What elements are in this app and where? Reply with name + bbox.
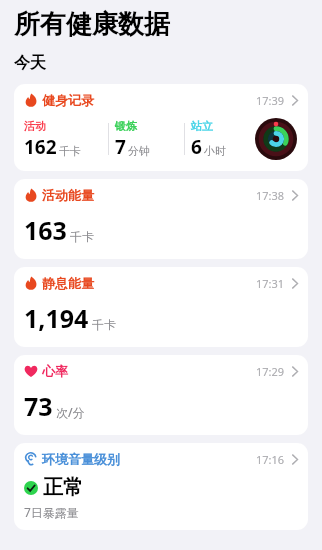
staticText: 锻炼 — [115, 119, 137, 133]
button[interactable]: 健身记录 — [14, 84, 308, 171]
staticText: 分钟 — [128, 144, 150, 158]
staticText: 活动 — [24, 119, 46, 133]
staticText: 心率 — [42, 363, 68, 379]
staticText: 17:29 — [256, 364, 285, 379]
staticText: 7 — [115, 134, 126, 160]
staticText: 73 — [24, 389, 53, 423]
staticText: 千卡 — [92, 317, 116, 332]
button[interactable]: 活动能量 — [14, 179, 308, 259]
staticText: 17:38 — [256, 188, 285, 203]
button[interactable]: 环境音量级别 — [14, 443, 308, 530]
staticText: 17:16 — [256, 452, 285, 467]
staticText: 千卡 — [70, 229, 94, 244]
staticText: 7日暴露量 — [24, 504, 79, 520]
staticText: 正常 — [43, 475, 83, 500]
staticText: 环境音量级别 — [42, 451, 120, 467]
staticText: 次/分 — [56, 404, 85, 420]
button[interactable]: 静息能量 — [14, 267, 308, 347]
staticText: 17:39 — [256, 93, 285, 108]
staticText: 162 — [24, 134, 57, 160]
staticText: 6 — [191, 134, 202, 160]
staticText: 静息能量 — [42, 275, 94, 291]
staticText: 17:31 — [256, 276, 285, 291]
staticText: 163 — [24, 213, 67, 247]
staticText: 所有健康数据 — [14, 8, 170, 41]
staticText: 今天 — [14, 53, 46, 73]
staticText: 健身记录 — [42, 92, 94, 108]
staticText: 小时 — [204, 144, 226, 158]
staticText: 1,194 — [24, 301, 89, 335]
button[interactable]: 心率 — [14, 355, 308, 435]
staticText: 站立 — [191, 119, 213, 133]
staticText: 活动能量 — [42, 187, 94, 203]
staticText: 千卡 — [59, 144, 81, 158]
